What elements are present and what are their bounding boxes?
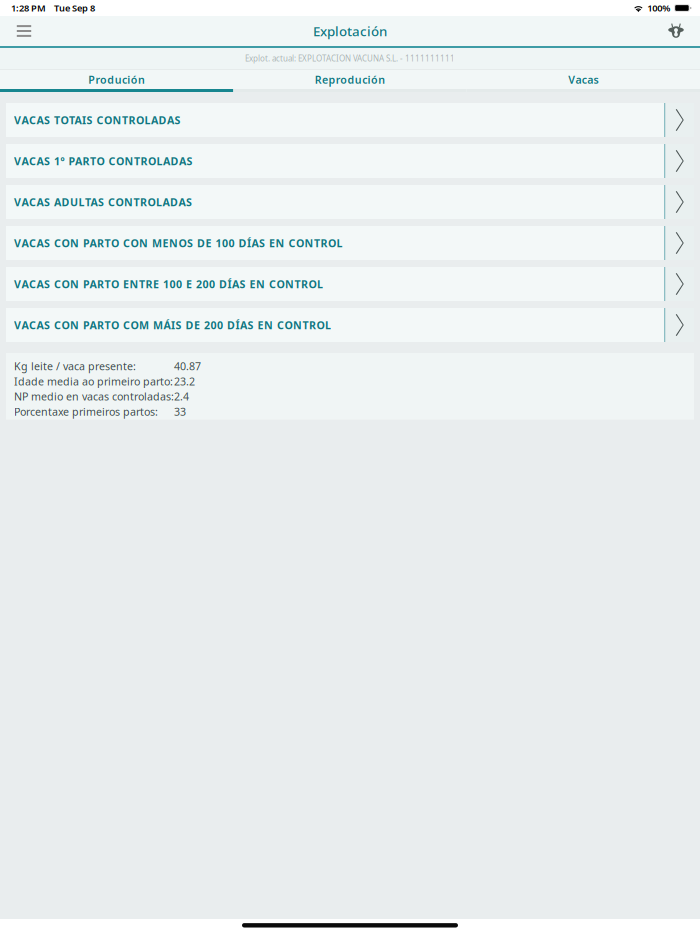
button[interactable]: VACAS ADULTAS CONTROLADAS bbox=[6, 185, 664, 219]
button[interactable]: Ver detalle de VACAS TOTAIS CONTROLADAS bbox=[665, 103, 694, 137]
staticText: NP medio en vacas controladas: bbox=[14, 389, 174, 403]
staticText: VACAS CON PARTO ENTRE 100 E 200 DÍAS EN … bbox=[14, 277, 323, 291]
staticText: Tue Sep 8 bbox=[54, 2, 95, 14]
button[interactable]: Ver detalle de VACAS CON PARTO CON MENOS… bbox=[665, 226, 694, 260]
staticText: 1:28 PM bbox=[11, 2, 46, 14]
button[interactable]: VACAS TOTAIS CONTROLADAS bbox=[6, 103, 664, 137]
staticText: Vacas bbox=[568, 72, 598, 87]
staticText: VACAS CON PARTO CON MENOS DE 100 DÍAS EN… bbox=[14, 236, 342, 250]
button[interactable]: VACAS CON PARTO COM MÁIS DE 200 DÍAS EN … bbox=[6, 308, 664, 342]
staticText: VACAS ADULTAS CONTROLADAS bbox=[14, 195, 192, 209]
staticText: Produción bbox=[88, 72, 145, 87]
staticText: VACAS TOTAIS CONTROLADAS bbox=[14, 113, 180, 127]
button[interactable]: VACAS CON PARTO CON MENOS DE 100 DÍAS EN… bbox=[6, 226, 664, 260]
button[interactable]: Ver detalle de VACAS ADULTAS CONTROLADAS bbox=[665, 185, 694, 219]
staticText: VACAS CON PARTO COM MÁIS DE 200 DÍAS EN … bbox=[14, 318, 331, 332]
staticText: 33 bbox=[174, 404, 186, 419]
button[interactable]: VACAS CON PARTO ENTRE 100 E 200 DÍAS EN … bbox=[6, 267, 664, 301]
staticText: Kg leite / vaca presente: bbox=[14, 359, 136, 373]
button[interactable]: Ver detalle de VACAS CON PARTO ENTRE 100… bbox=[665, 267, 694, 301]
staticText: Explot. actual: EXPLOTACIÓN VACUNA S.L. … bbox=[245, 53, 455, 64]
button[interactable]: Ver detalle de VACAS CON PARTO COM MÁIS … bbox=[665, 308, 694, 342]
button[interactable]: Menú bbox=[2, 15, 46, 47]
button[interactable]: Reprodución bbox=[233, 70, 467, 92]
staticText: Reprodución bbox=[315, 72, 385, 87]
staticText: 100% bbox=[647, 2, 670, 14]
staticText: 23.2 bbox=[174, 374, 195, 388]
button[interactable]: Explotación bbox=[654, 15, 698, 47]
staticText: 2.4 bbox=[174, 389, 189, 403]
staticText: VACAS 1º PARTO CONTROLADAS bbox=[14, 154, 192, 168]
staticText: Porcentaxe primeiros partos: bbox=[14, 404, 158, 419]
staticText: 40.87 bbox=[174, 359, 201, 373]
button[interactable]: Produción bbox=[0, 70, 233, 92]
button[interactable]: Ver detalle de VACAS 1º PARTO CONTROLADA… bbox=[665, 144, 694, 178]
staticText: Idade media ao primeiro parto: bbox=[14, 374, 173, 388]
staticText: Explotación bbox=[313, 22, 387, 40]
button[interactable]: Vacas bbox=[467, 70, 700, 92]
button[interactable]: VACAS 1º PARTO CONTROLADAS bbox=[6, 144, 664, 178]
